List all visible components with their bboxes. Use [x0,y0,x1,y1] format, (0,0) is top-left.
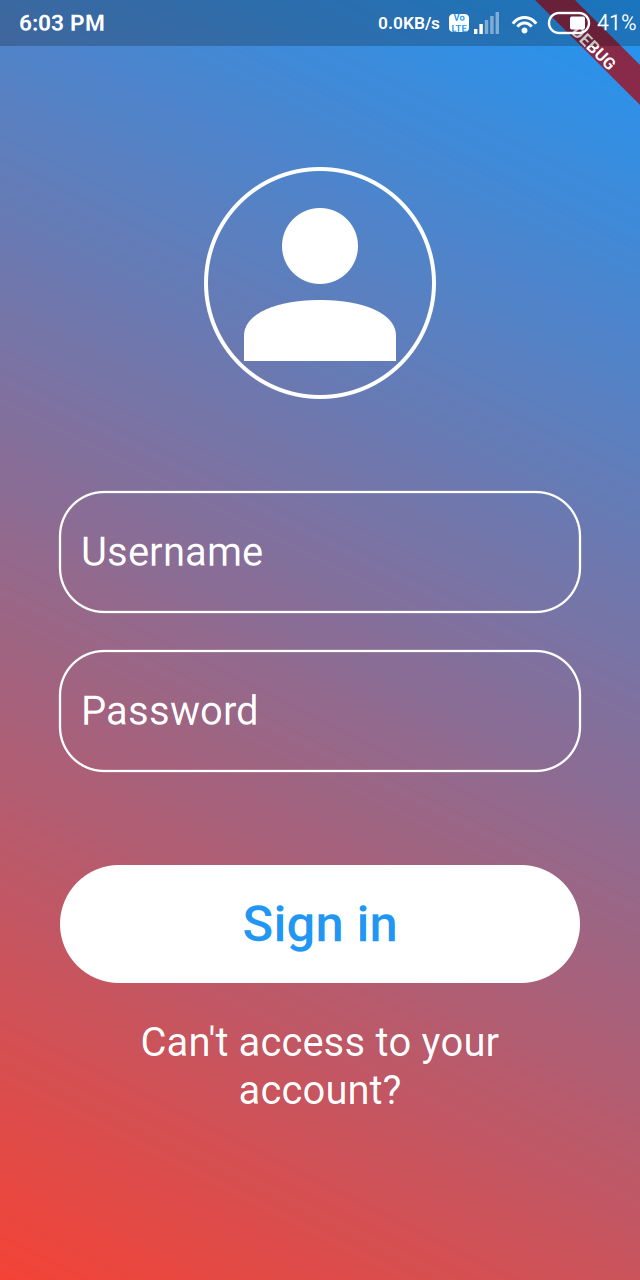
staticText: Sign in [242,894,397,954]
staticText: 41% [597,10,637,35]
staticText: Can't access to your [140,1019,499,1066]
button[interactable]: Can't access to your [140,1019,499,1114]
staticText: 6:03 PM [19,10,105,36]
staticText: Username [81,529,263,575]
staticText: account? [238,1067,401,1114]
staticText: Password [81,688,259,734]
staticText: 0.0KB/s [378,13,440,33]
staticText: LTE [451,23,466,34]
button[interactable]: Sign in [60,865,580,983]
staticText: Vo [453,12,464,23]
button[interactable]: Password [60,651,580,771]
staticText: DEBUG [566,38,621,58]
button[interactable]: Username [60,492,580,612]
